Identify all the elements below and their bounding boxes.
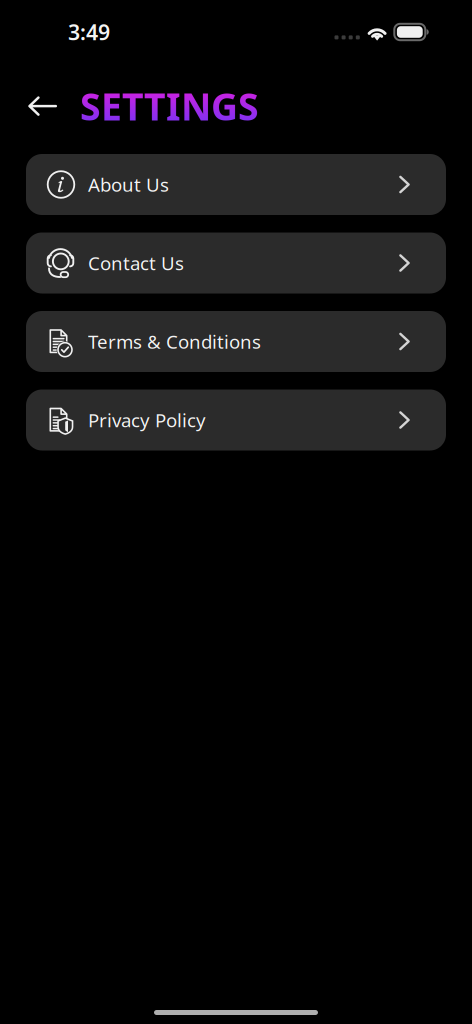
button[interactable]: About Us bbox=[26, 154, 446, 215]
staticText: Privacy Policy bbox=[88, 408, 206, 432]
staticText: Contact Us bbox=[88, 251, 184, 275]
staticText: Terms & Conditions bbox=[88, 329, 261, 354]
button[interactable]: Terms & Conditions bbox=[26, 311, 446, 372]
button[interactable]: Privacy Policy bbox=[26, 389, 446, 450]
button[interactable]: Back bbox=[22, 87, 63, 124]
button[interactable]: Contact Us bbox=[26, 232, 446, 293]
staticText: 3:49 bbox=[68, 18, 110, 46]
staticText: About Us bbox=[88, 172, 169, 197]
